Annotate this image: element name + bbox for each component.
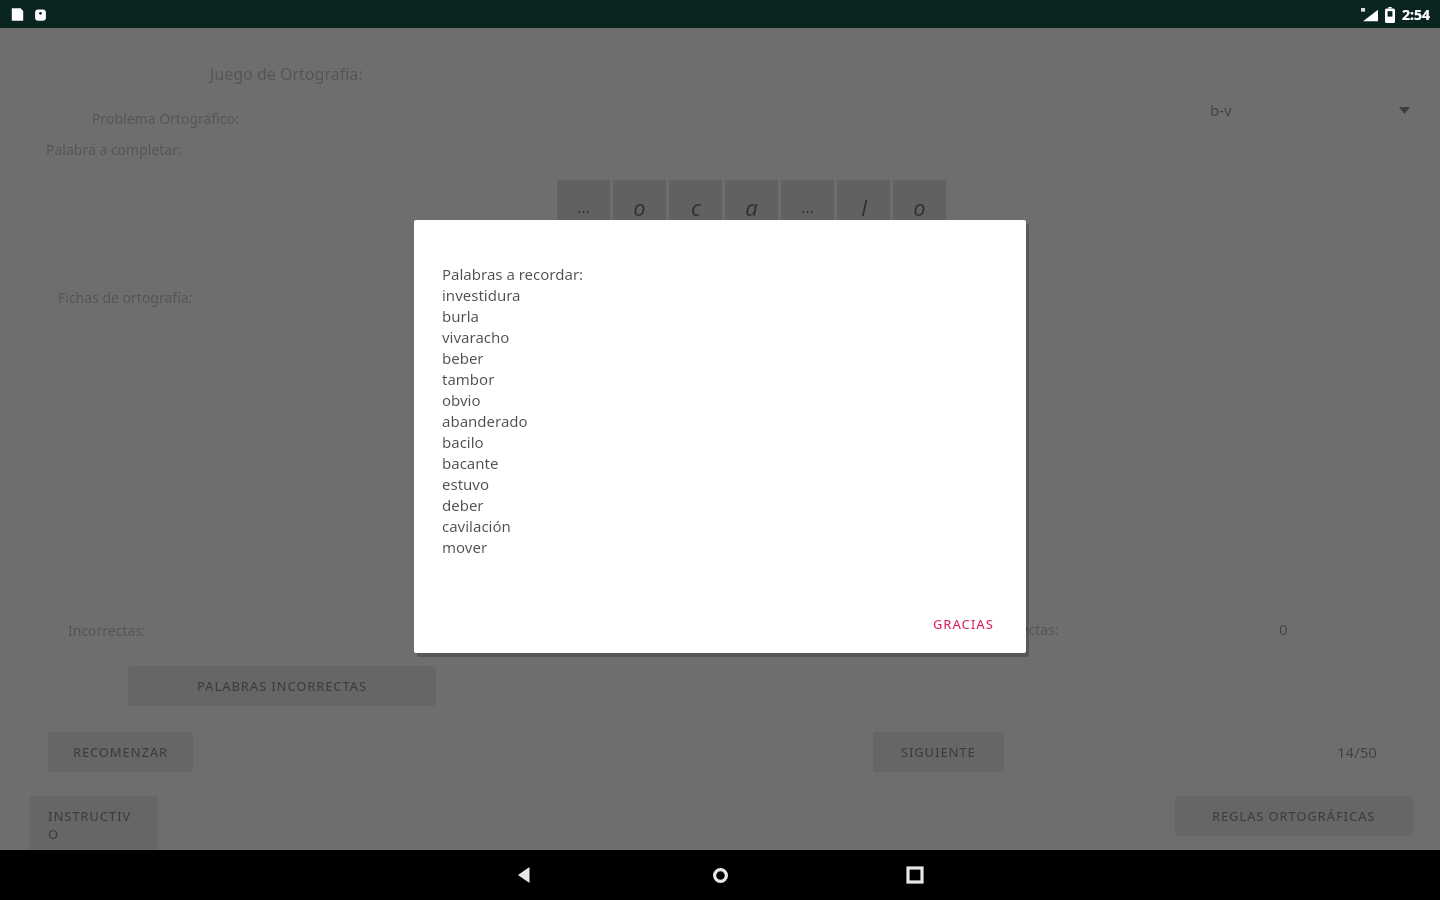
staticText: Palabras a recordar: [442, 264, 584, 285]
staticText: Problema Ortográfico: [92, 109, 239, 128]
staticText: cavilación [442, 516, 511, 537]
staticText: Correctas: [992, 620, 1059, 639]
button[interactable]: b-v [1210, 100, 1410, 120]
button[interactable]: o [613, 180, 666, 233]
staticText: b-v [1210, 100, 1232, 120]
staticText: RECOMENZAR [73, 743, 169, 761]
button[interactable]: Recent apps [895, 855, 935, 895]
staticText: o [913, 192, 926, 222]
staticText: vivaracho [442, 327, 510, 348]
button[interactable]: Back [505, 855, 545, 895]
staticText: 2:54 [1402, 5, 1430, 24]
staticText: … [801, 196, 814, 218]
staticText: … [577, 196, 590, 218]
button[interactable]: PALABRAS INCORRECTAS [128, 666, 436, 706]
staticText: Palabra a completar: [46, 140, 182, 159]
button[interactable]: INSTRUCTIVO [30, 796, 158, 854]
button[interactable]: Home [700, 855, 740, 895]
staticText: abanderado [442, 411, 528, 432]
staticText: estuvo [442, 474, 490, 495]
staticText: Incorrectas: [68, 621, 146, 640]
button[interactable]: a [725, 180, 778, 233]
staticText: c [691, 192, 701, 222]
staticText: REGLAS ORTOGRÁFICAS [1212, 807, 1376, 825]
staticText: SIGUIENTE [901, 743, 976, 761]
staticText: INSTRUCTIVO [48, 807, 140, 843]
staticText: a [745, 192, 758, 222]
staticText: PALABRAS INCORRECTAS [197, 677, 367, 695]
staticText: l [861, 192, 867, 222]
staticText: burla [442, 306, 479, 327]
staticText: bacante [442, 453, 499, 474]
staticText: bacilo [442, 432, 484, 453]
staticText: tambor [442, 369, 495, 390]
staticText: obvio [442, 390, 481, 411]
button[interactable]: o [893, 180, 946, 233]
button[interactable]: GRACIAS [925, 609, 1002, 639]
button[interactable]: l [837, 180, 890, 233]
button[interactable]: c [669, 180, 722, 233]
button[interactable]: RECOMENZAR [48, 732, 193, 772]
staticText: GRACIAS [933, 615, 994, 633]
staticText: mover [442, 537, 488, 558]
staticText: Juego de Ortografía: [210, 63, 363, 85]
staticText: 0 [1279, 619, 1288, 639]
staticText: deber [442, 495, 484, 516]
button[interactable]: … [557, 180, 610, 233]
staticText: Fichas de ortografía: [58, 288, 193, 307]
button[interactable]: SIGUIENTE [873, 732, 1004, 772]
staticText: investidura [442, 285, 521, 306]
staticText: beber [442, 348, 484, 369]
button[interactable]: REGLAS ORTOGRÁFICAS [1175, 796, 1413, 836]
staticText: 14/50 [1337, 742, 1377, 762]
button[interactable]: … [781, 180, 834, 233]
staticText: o [633, 192, 646, 222]
